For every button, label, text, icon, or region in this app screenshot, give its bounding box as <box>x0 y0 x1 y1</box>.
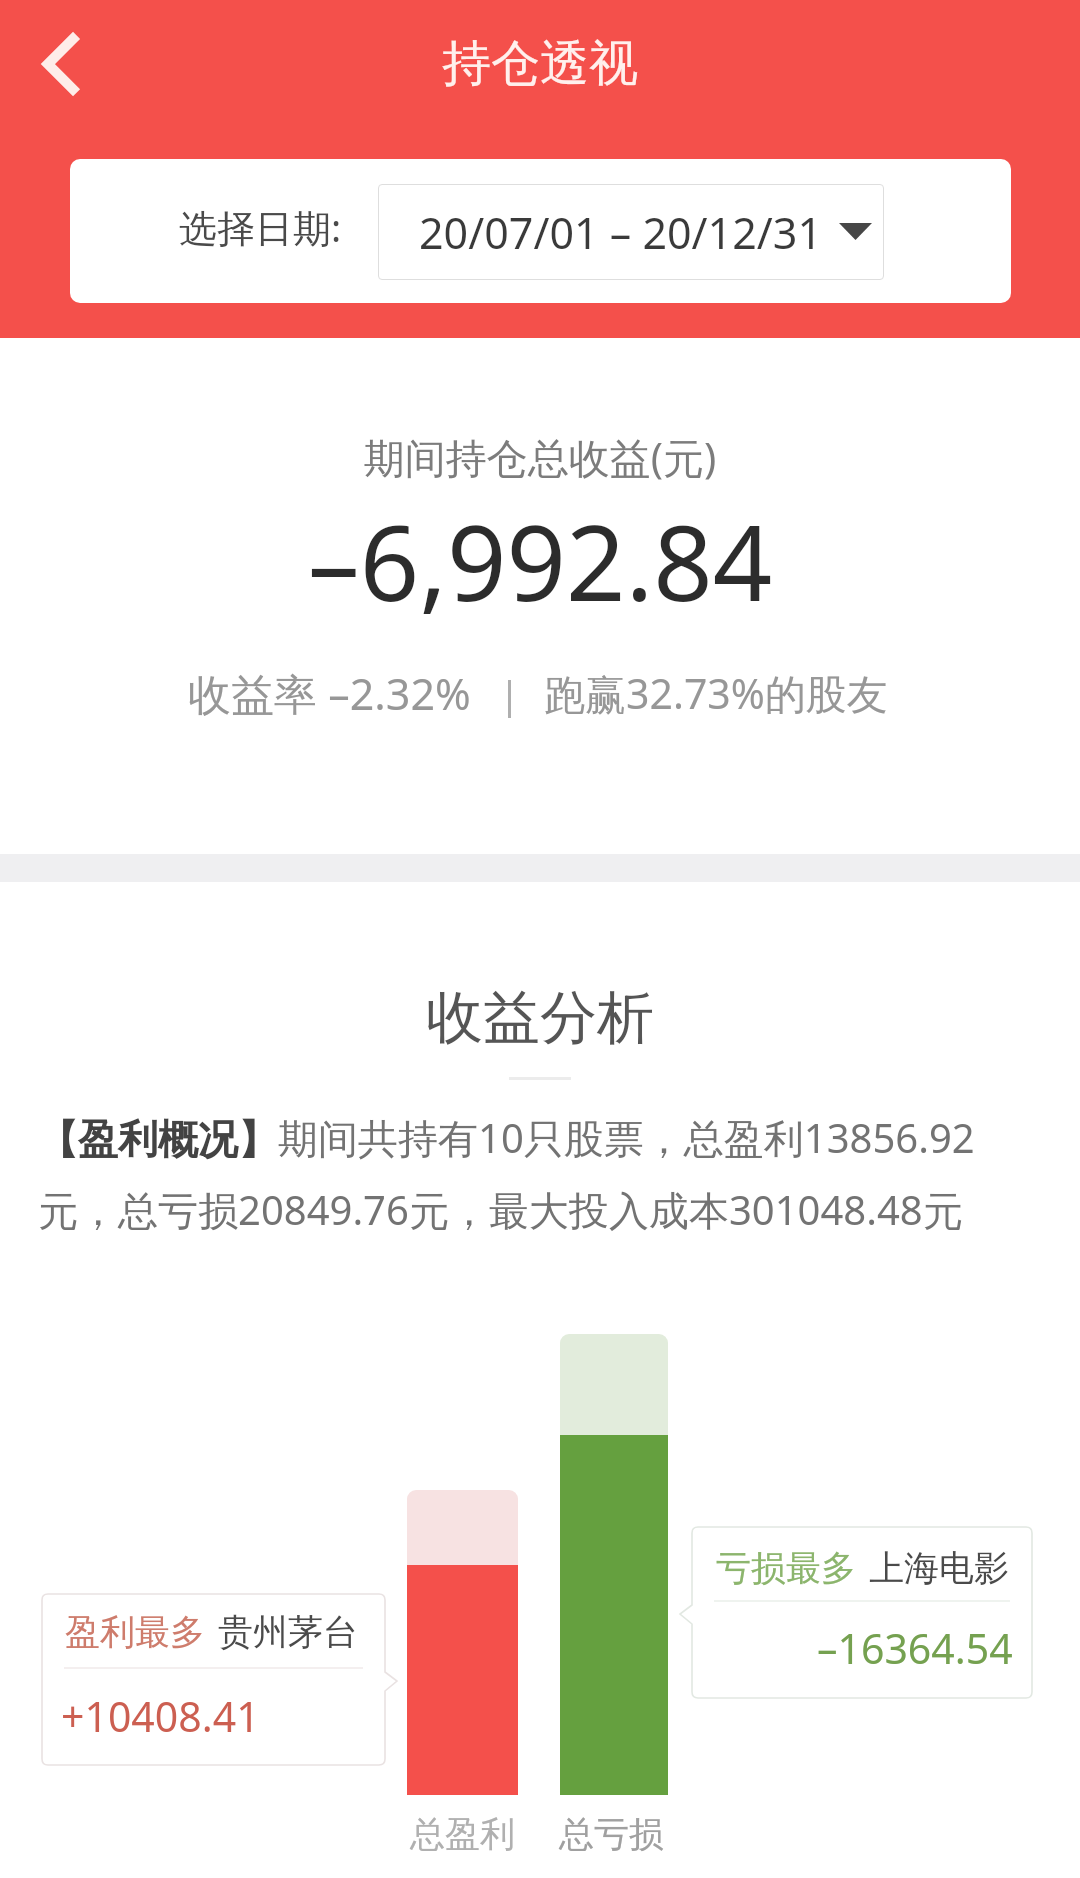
staticText: 【盈利概况】期间共持有10只股票，总盈利13856.92元，总亏损20849.7… <box>38 1110 1042 1237</box>
button[interactable]: Back <box>18 20 102 104</box>
staticText: 20/07/01 – 20/12/31 <box>419 203 822 262</box>
staticText: +10408.41 <box>61 1688 260 1744</box>
button[interactable]: 20/07/01 – 20/12/31 <box>378 184 884 280</box>
staticText: 贵州茅台 <box>218 1610 358 1654</box>
staticText: 跑赢32.73%的股友 <box>544 665 888 721</box>
staticText: –16364.54 <box>817 1620 1013 1676</box>
staticText: 盈利最多 <box>65 1610 205 1654</box>
staticText: 选择日期: <box>179 201 342 253</box>
button[interactable]: 亏损最多 <box>680 1527 1035 1700</box>
staticText: 持仓透视 <box>0 33 1080 95</box>
button[interactable]: 盈利最多 <box>42 1594 397 1767</box>
staticText: 亏损最多 <box>716 1546 856 1590</box>
staticText: 上海电影 <box>869 1546 1009 1590</box>
staticText: –6,992.84 <box>0 490 1080 632</box>
staticText: 期间持仓总收益(元) <box>0 429 1080 485</box>
staticText: 总盈利 <box>410 1812 515 1856</box>
staticText: 收益分析 <box>0 982 1080 1054</box>
staticText: 总亏损 <box>559 1812 664 1856</box>
staticText: 收益率 –2.32% <box>188 664 471 723</box>
